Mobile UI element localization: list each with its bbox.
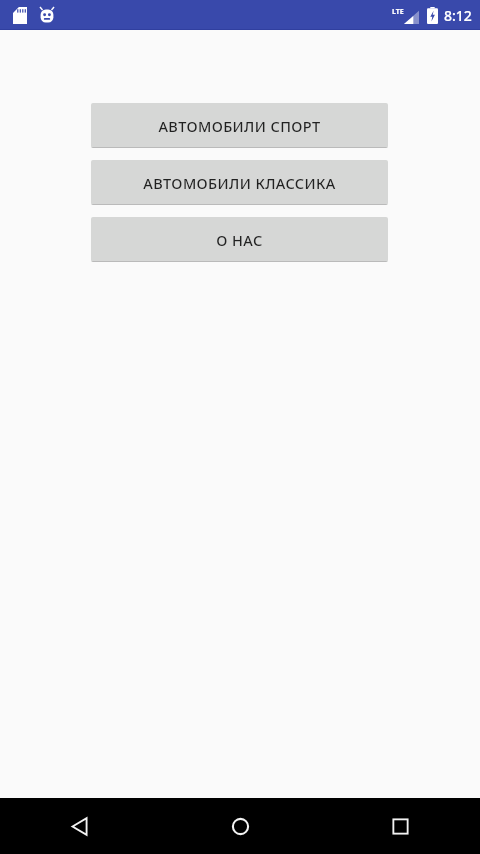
button[interactable]: Home <box>160 798 320 854</box>
button[interactable]: АВТОМОБИЛИ КЛАССИКА <box>91 160 388 205</box>
staticText: 8:12 <box>444 6 472 25</box>
button[interactable]: Back <box>0 798 160 854</box>
staticText: АВТОМОБИЛИ КЛАССИКА <box>143 173 336 193</box>
button[interactable]: АВТОМОБИЛИ СПОРТ <box>91 103 388 148</box>
button[interactable]: Recent apps <box>320 798 480 854</box>
staticText: LTE <box>392 7 404 17</box>
staticText: О НАС <box>216 230 263 250</box>
staticText: АВТОМОБИЛИ СПОРТ <box>158 116 321 136</box>
button[interactable]: О НАС <box>91 217 388 262</box>
